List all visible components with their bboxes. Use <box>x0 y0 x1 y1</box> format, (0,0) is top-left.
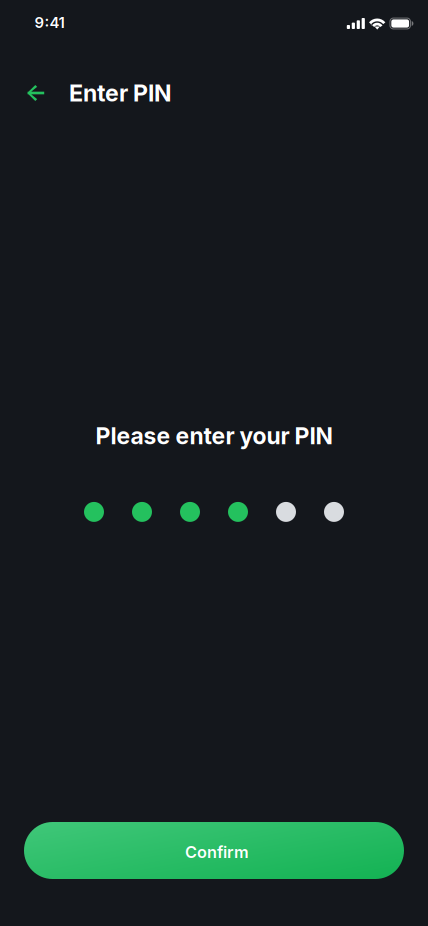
staticText: Confirm <box>185 842 249 862</box>
staticText: 9:41 <box>34 13 64 32</box>
button[interactable]: Back <box>14 71 58 115</box>
button[interactable]: Confirm <box>24 822 404 879</box>
staticText: Enter PIN <box>69 79 172 107</box>
staticText: Please enter your PIN <box>95 422 332 450</box>
